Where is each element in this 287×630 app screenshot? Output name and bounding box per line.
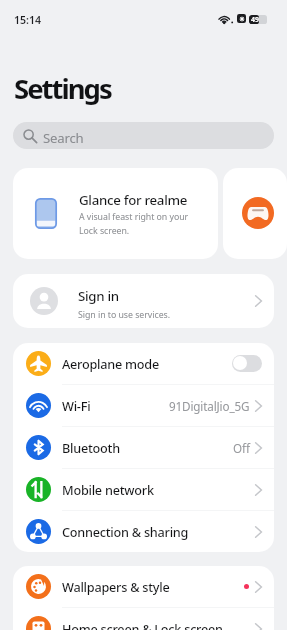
staticText: Sign in to use services. <box>78 309 171 321</box>
button[interactable]: Aeroplane mode <box>13 343 274 384</box>
staticText: A visual feast right on your Lock screen… <box>79 211 189 236</box>
button[interactable]: Search <box>13 122 274 149</box>
staticText: Wallpapers & style <box>62 578 244 595</box>
staticText: Connection & sharing <box>62 523 255 540</box>
staticText: Glance for realme <box>79 191 188 209</box>
staticText: Search <box>43 129 84 147</box>
staticText: 49 <box>251 15 260 24</box>
button[interactable]: Connection & sharing <box>13 511 274 552</box>
button[interactable]: Bluetooth <box>13 427 274 468</box>
button[interactable]: Wallpapers & style <box>13 566 274 607</box>
staticText: Home screen & Lock screen <box>62 620 255 630</box>
staticText: Aeroplane mode <box>62 355 232 372</box>
staticText: Settings <box>14 70 111 107</box>
staticText: Mobile network <box>62 481 255 498</box>
staticText: 15:14 <box>14 13 42 27</box>
button[interactable]: Sign in <box>13 274 274 328</box>
staticText: Wi-Fi <box>62 397 169 414</box>
button[interactable]: Game Space <box>223 168 287 259</box>
button[interactable]: Home screen & Lock screen <box>13 608 274 630</box>
staticText: Bluetooth <box>62 439 233 456</box>
button[interactable]: Glance for realme <box>13 168 218 259</box>
button[interactable]: Wi-Fi <box>13 385 274 426</box>
staticText: 91DigitalJio_5G <box>169 398 250 414</box>
button[interactable]: Mobile network <box>13 469 274 510</box>
staticText: Off <box>233 440 250 456</box>
staticText: Sign in <box>78 287 119 305</box>
